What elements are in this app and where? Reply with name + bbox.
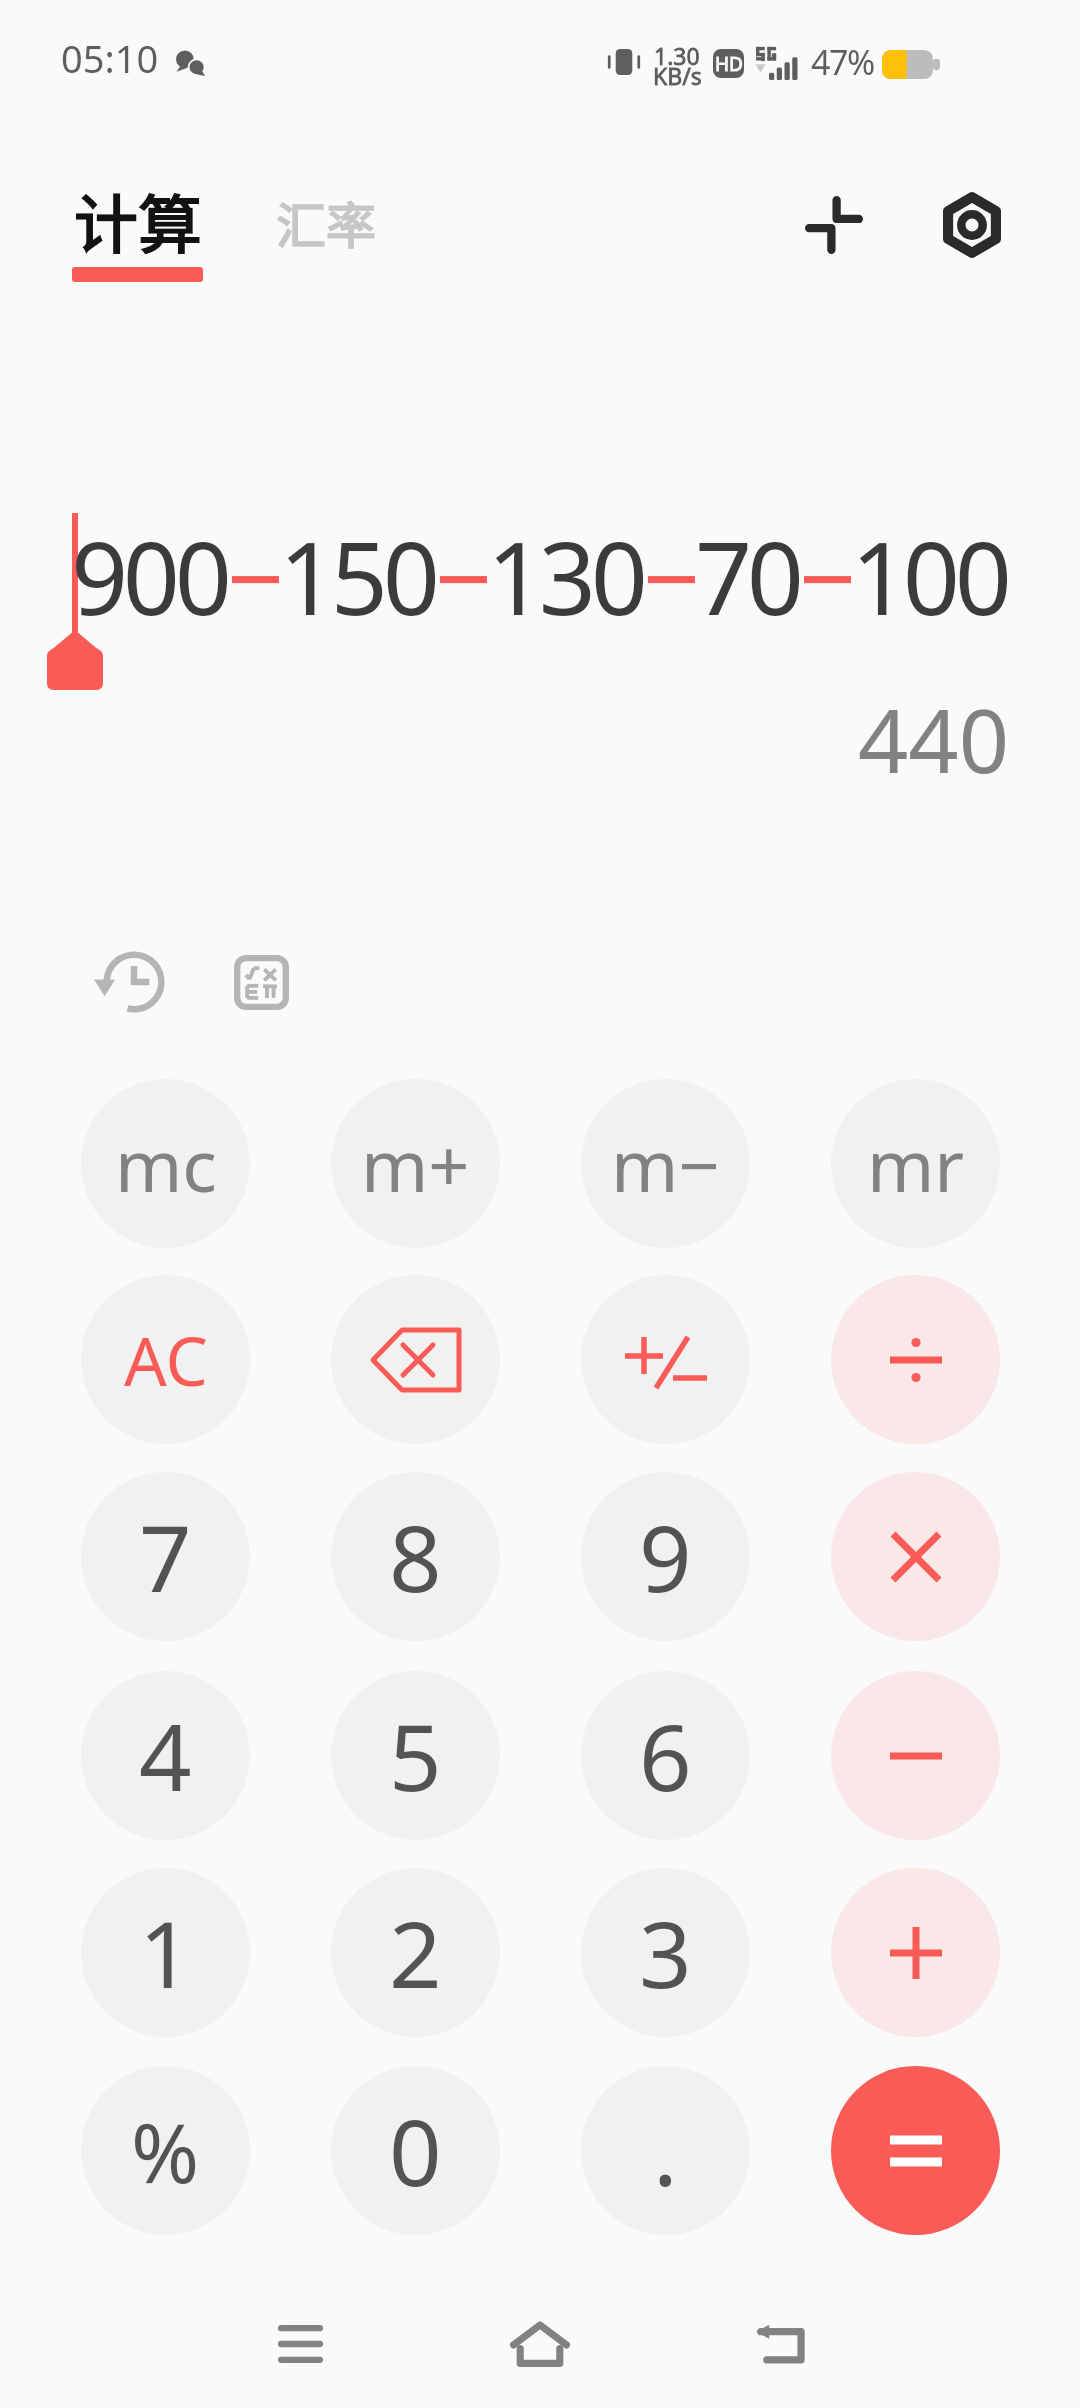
button[interactable]: 4 <box>81 1671 250 1840</box>
staticText: m+ <box>361 1115 470 1213</box>
staticText: 47% <box>811 39 874 85</box>
button[interactable]: Back <box>728 2292 832 2396</box>
staticText: 1.30 <box>654 40 700 71</box>
button[interactable]: mc <box>81 1079 250 1248</box>
button[interactable]: Divide <box>831 1275 1000 1444</box>
button[interactable]: 8 <box>331 1472 500 1641</box>
button[interactable]: mr <box>831 1079 1000 1248</box>
button[interactable]: 1 <box>81 1868 250 2037</box>
button[interactable]: AC <box>81 1275 250 1444</box>
staticText: AC <box>124 1314 208 1405</box>
button[interactable]: Screenshot crop <box>776 167 892 283</box>
button[interactable]: History <box>78 934 174 1030</box>
button[interactable]: m+ <box>331 1079 500 1248</box>
button[interactable]: Recent apps <box>248 2292 352 2396</box>
staticText: 150 <box>279 508 435 644</box>
staticText: m− <box>611 1115 720 1213</box>
button[interactable]: 9 <box>581 1472 750 1641</box>
staticText: − <box>799 508 851 644</box>
staticText: 6 <box>639 1693 692 1818</box>
button[interactable]: % <box>81 2066 250 2235</box>
button[interactable]: 计算 <box>60 168 219 290</box>
staticText: mc <box>115 1115 217 1213</box>
staticText: 900 <box>71 508 227 644</box>
staticText: HD <box>715 51 743 77</box>
staticText: 2 <box>389 1890 442 2015</box>
staticText: − <box>643 508 695 644</box>
staticText: 计算 <box>74 174 202 267</box>
button[interactable]: Settings <box>914 167 1030 283</box>
staticText: 5 <box>389 1693 442 1818</box>
button[interactable]: Toggle sign <box>581 1275 750 1444</box>
staticText: − <box>435 508 487 644</box>
staticText: . <box>653 2088 678 2213</box>
staticText: 7 <box>139 1494 192 1619</box>
staticText: mr <box>867 1115 965 1213</box>
staticText: 4 <box>139 1693 192 1818</box>
staticText: 1 <box>139 1890 192 2015</box>
button[interactable]: 5 <box>331 1671 500 1840</box>
staticText: − <box>227 508 279 644</box>
button[interactable]: Add <box>831 1868 1000 2037</box>
button[interactable]: Scientific keypad <box>213 934 309 1030</box>
button[interactable]: . <box>581 2066 750 2235</box>
staticText: 440 <box>858 679 1010 799</box>
staticText: 3 <box>639 1890 692 2015</box>
button[interactable]: Home <box>488 2292 592 2396</box>
button[interactable]: 0 <box>331 2066 500 2235</box>
button[interactable]: Equals <box>831 2066 1000 2235</box>
button[interactable]: 6 <box>581 1671 750 1840</box>
button[interactable]: 7 <box>81 1472 250 1641</box>
staticText: 0 <box>389 2088 442 2213</box>
staticText: KB/s <box>653 60 702 91</box>
staticText: 70 <box>695 508 799 644</box>
button[interactable]: 3 <box>581 1868 750 2037</box>
staticText: 130 <box>487 508 643 644</box>
staticText: 8 <box>389 1494 442 1619</box>
staticText: % <box>131 2095 200 2207</box>
button[interactable]: Subtract <box>831 1671 1000 1840</box>
staticText: 9 <box>639 1494 692 1619</box>
staticText: 05:10 <box>61 32 159 84</box>
button[interactable]: Backspace <box>331 1275 500 1444</box>
button[interactable]: Multiply <box>831 1472 1000 1641</box>
staticText: 100 <box>851 508 1007 644</box>
button[interactable]: m− <box>581 1079 750 1248</box>
button[interactable]: 2 <box>331 1868 500 2037</box>
button[interactable]: 汇率 <box>262 178 390 266</box>
staticText: 汇率 <box>276 186 376 258</box>
